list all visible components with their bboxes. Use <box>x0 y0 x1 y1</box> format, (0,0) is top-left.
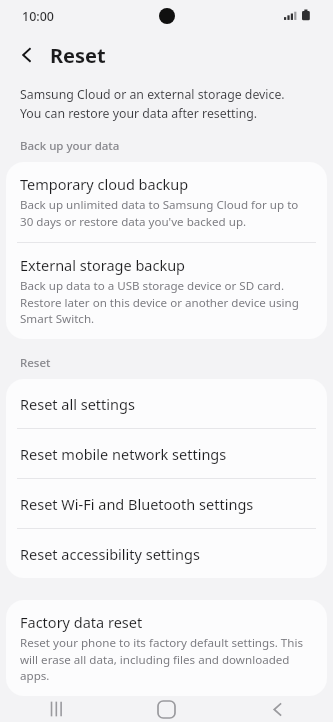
staticText: External storage backup <box>20 255 186 275</box>
button[interactable]: Reset accessibility settings <box>6 529 327 578</box>
staticText: Reset Wi-Fi and Bluetooth settings <box>20 494 254 514</box>
staticText: Back up unlimited data to Samsung Cloud … <box>20 197 307 229</box>
staticText: Factory data reset <box>20 612 143 632</box>
staticText: Reset accessibility settings <box>20 544 200 564</box>
staticText: Temporary cloud backup <box>20 174 189 194</box>
button[interactable]: Back <box>10 38 44 72</box>
button[interactable]: External storage backup <box>6 243 327 339</box>
button[interactable]: Temporary cloud backup <box>6 162 327 242</box>
button[interactable]: Reset mobile network settings <box>6 429 327 478</box>
button[interactable]: Home <box>111 696 222 722</box>
button[interactable]: Back <box>222 696 333 722</box>
staticText: Reset <box>50 42 106 69</box>
staticText: 10:00 <box>22 8 55 25</box>
button[interactable]: Reset all settings <box>6 379 327 428</box>
staticText: Back up your data <box>20 138 333 154</box>
staticText: Reset mobile network settings <box>20 444 227 464</box>
button[interactable]: Recent apps <box>0 696 111 722</box>
staticText: Samsung Cloud or an external storage dev… <box>20 86 307 122</box>
staticText: Back up data to a USB storage device or … <box>20 278 307 326</box>
button[interactable]: Reset Wi-Fi and Bluetooth settings <box>6 479 327 528</box>
staticText: Reset all settings <box>20 394 135 414</box>
staticText: Reset <box>20 355 333 371</box>
staticText: Reset your phone to its factory default … <box>20 635 307 683</box>
button[interactable]: Factory data reset <box>6 600 327 696</box>
